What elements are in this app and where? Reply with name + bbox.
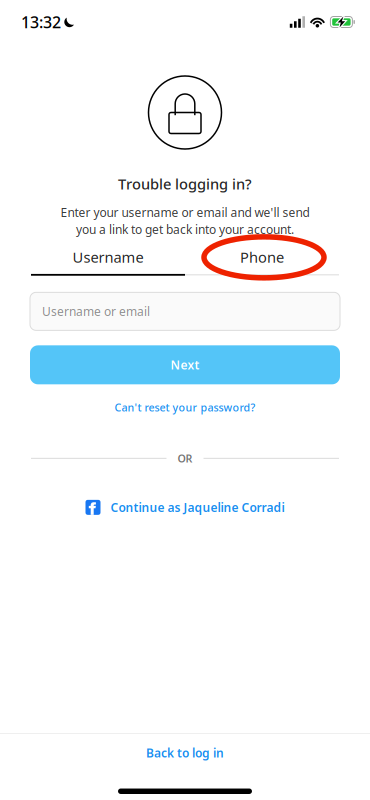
staticText: Back to log in [146,745,224,761]
staticText: Phone [240,247,284,267]
staticText: Username or email [42,303,150,319]
button[interactable]: Back to log in [0,734,370,770]
button[interactable]: Phone [185,245,339,274]
button[interactable]: Username [31,245,185,274]
button[interactable]: Next [30,345,340,384]
button[interactable]: Can't reset your password? [114,396,255,418]
staticText: Next [170,357,199,373]
button[interactable]: Continue as Jaqueline Corradi [85,494,284,520]
staticText: Enter your username or email and we'll s… [60,204,309,220]
staticText: Username [72,247,143,267]
staticText: Continue as Jaqueline Corradi [110,499,284,515]
staticText: Can't reset your password? [114,400,255,414]
staticText: OR [177,451,192,465]
staticText: Trouble logging in? [118,174,252,193]
staticText: 13:32 [21,11,61,33]
staticText: you a link to get back into your account… [76,221,294,237]
